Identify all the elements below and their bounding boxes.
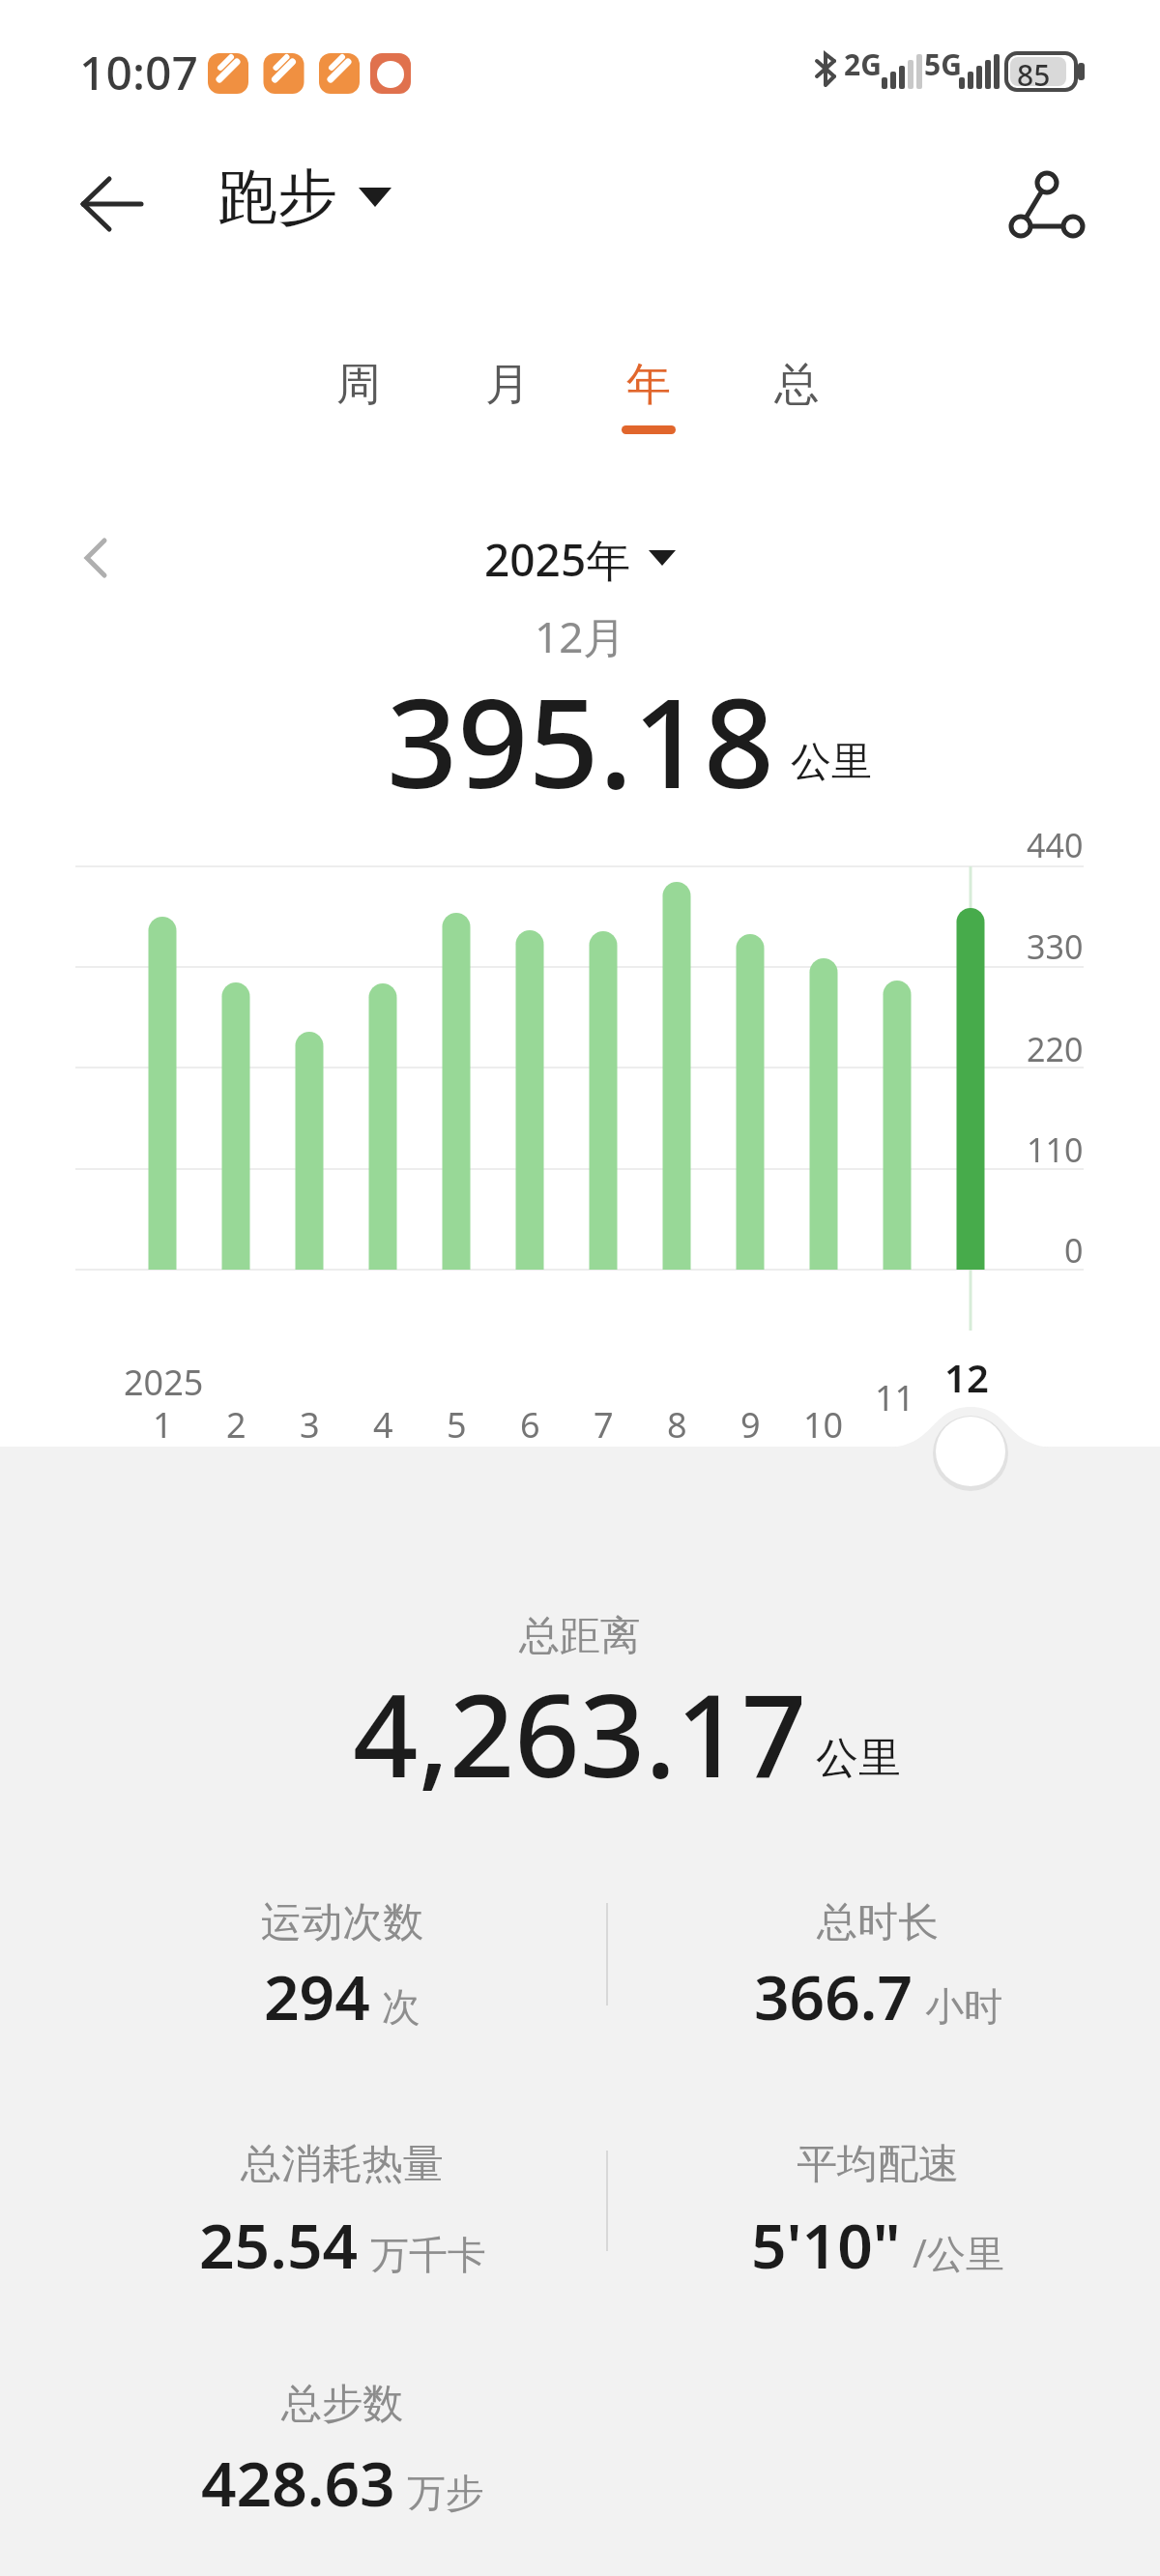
button[interactable]: 跑步 xyxy=(217,160,391,235)
staticText: 9 xyxy=(740,1401,761,1448)
button[interactable]: 2025年 xyxy=(484,529,676,587)
staticText: 2 xyxy=(226,1401,246,1448)
staticText: 总 xyxy=(774,357,819,413)
button[interactable] xyxy=(79,176,145,232)
staticText: 周 xyxy=(336,357,381,413)
staticText: 220 xyxy=(1027,1027,1084,1071)
staticText: 5G xyxy=(924,44,962,84)
staticText: 总步数 xyxy=(281,2379,403,2430)
staticText: 总消耗热量 xyxy=(241,2139,444,2190)
staticText: 8 xyxy=(667,1401,687,1448)
staticText: 110 xyxy=(1027,1127,1084,1172)
staticText: 5'10" xyxy=(751,2203,901,2287)
staticText: 0 xyxy=(1064,1228,1084,1273)
staticText: 11 xyxy=(875,1374,915,1420)
staticText: 2025年 xyxy=(484,529,631,587)
staticText: 25.54 xyxy=(199,2203,359,2287)
staticText: 2025 xyxy=(124,1359,204,1406)
staticText: 次 xyxy=(382,1982,420,2031)
staticText: 366.7 xyxy=(754,1954,913,2038)
staticText: 7 xyxy=(594,1401,614,1448)
staticText: /公里 xyxy=(913,2226,1004,2279)
staticText: 428.63 xyxy=(201,2441,395,2525)
button[interactable] xyxy=(1005,166,1088,242)
staticText: 运动次数 xyxy=(261,1897,423,1948)
staticText: 4,263.17 xyxy=(353,1655,807,1791)
staticText: 12 xyxy=(944,1351,989,1401)
staticText: 小时 xyxy=(925,1982,1002,2031)
staticText: 跑步 xyxy=(217,160,337,235)
button[interactable]: 年 xyxy=(595,341,702,428)
staticText: 万步 xyxy=(407,2469,484,2517)
staticText: 总时长 xyxy=(817,1897,939,1948)
button[interactable]: 周 xyxy=(305,341,412,428)
button[interactable] xyxy=(77,537,116,579)
staticText: 395.18 xyxy=(387,656,774,791)
staticText: 440 xyxy=(1027,823,1084,867)
staticText: 3 xyxy=(300,1401,320,1448)
staticText: 公里 xyxy=(791,737,872,788)
staticText: 月 xyxy=(485,357,530,413)
staticText: 年 xyxy=(626,357,671,413)
staticText: 85 xyxy=(1017,55,1051,95)
staticText: 2G xyxy=(844,44,882,84)
staticText: 12月 xyxy=(535,607,626,665)
staticText: 330 xyxy=(1027,924,1084,969)
staticText: 6 xyxy=(520,1401,540,1448)
staticText: 1 xyxy=(153,1401,173,1448)
button[interactable]: 月 xyxy=(454,341,561,428)
staticText: 294 xyxy=(264,1954,370,2038)
staticText: 10 xyxy=(803,1401,844,1448)
staticText: 平均配速 xyxy=(797,2139,959,2190)
staticText: 4 xyxy=(373,1401,393,1448)
staticText: 万千卡 xyxy=(370,2231,486,2279)
staticText: 5 xyxy=(447,1401,467,1448)
staticText: 总距离 xyxy=(519,1611,641,1662)
button[interactable]: 总 xyxy=(743,341,850,428)
staticText: 公里 xyxy=(816,1732,901,1785)
staticText: 10:07 xyxy=(79,41,198,103)
